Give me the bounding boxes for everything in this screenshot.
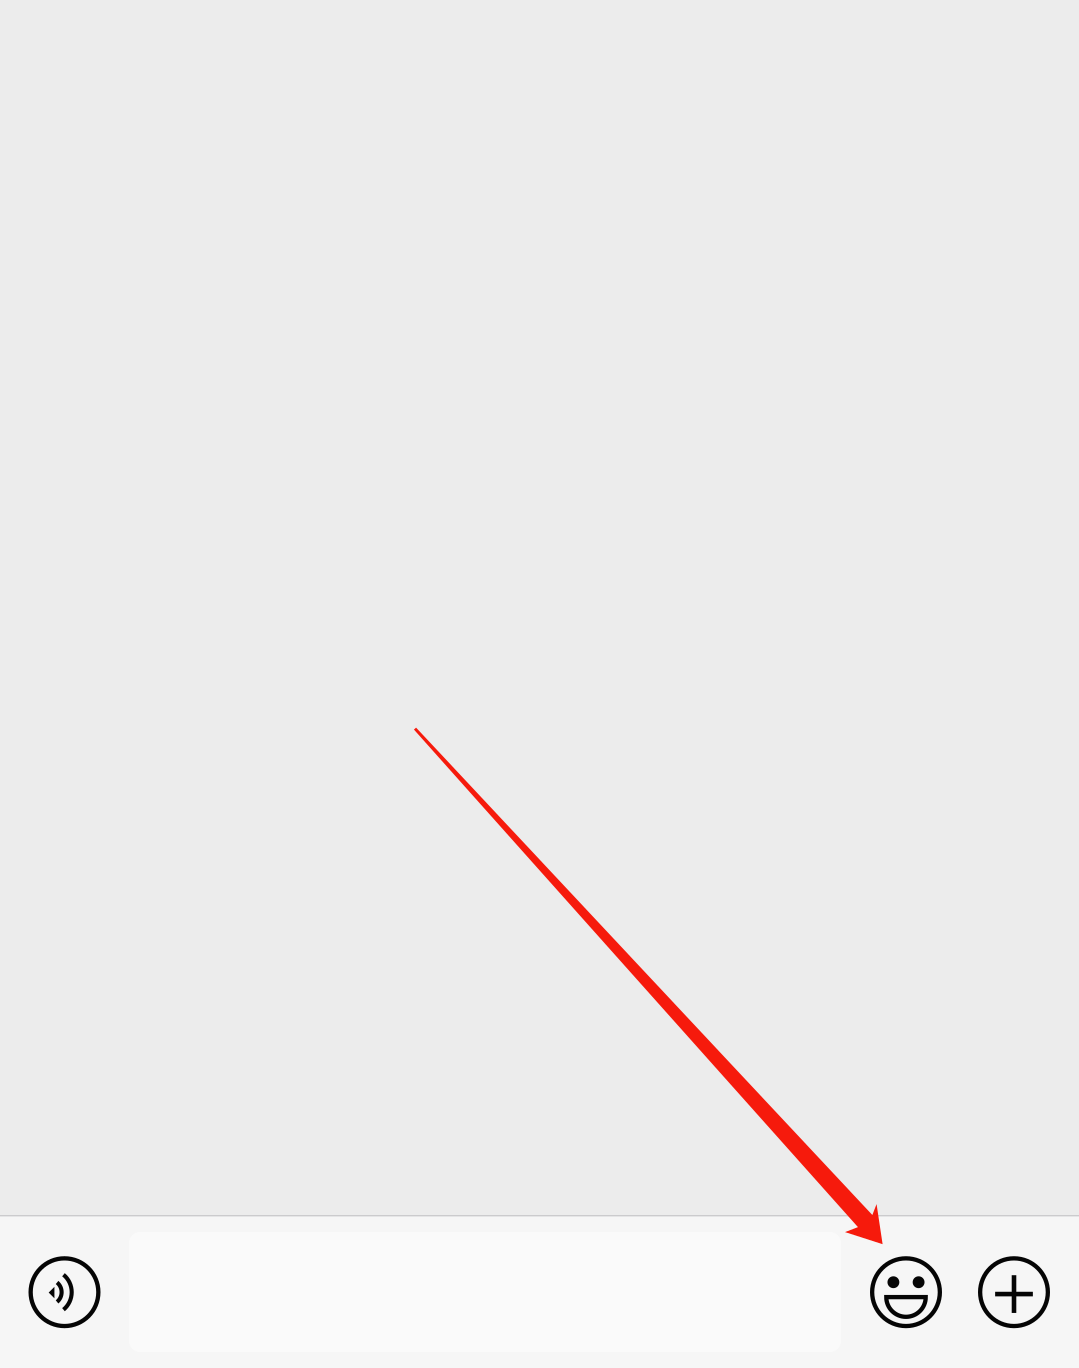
- button[interactable]: Record audio message: [0, 1216, 129, 1368]
- button[interactable]: Stickers: [863, 1216, 949, 1368]
- button[interactable]: Add attachment: [949, 1216, 1079, 1368]
